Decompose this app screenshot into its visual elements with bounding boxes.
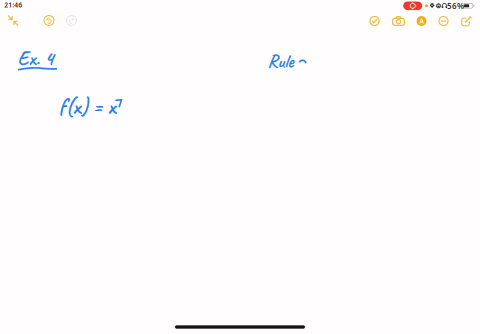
staticText: 56%	[447, 0, 464, 11]
staticText: A	[419, 17, 423, 25]
button[interactable]: Exit full screen	[2, 9, 24, 31]
button[interactable]: Text tool	[410, 10, 432, 32]
staticText: 21:46	[4, 0, 22, 9]
button[interactable]: Done	[363, 10, 385, 32]
staticText: Rule	[267, 49, 293, 73]
button[interactable]: New note	[455, 10, 477, 32]
button[interactable]: Undo	[38, 9, 60, 31]
staticText: Ex. 4	[17, 46, 53, 71]
button[interactable]: Insert photo	[387, 10, 409, 32]
button[interactable]: Redo	[60, 9, 82, 31]
button[interactable]: Shapes	[432, 10, 454, 32]
staticText: f(x) = x	[58, 92, 115, 121]
